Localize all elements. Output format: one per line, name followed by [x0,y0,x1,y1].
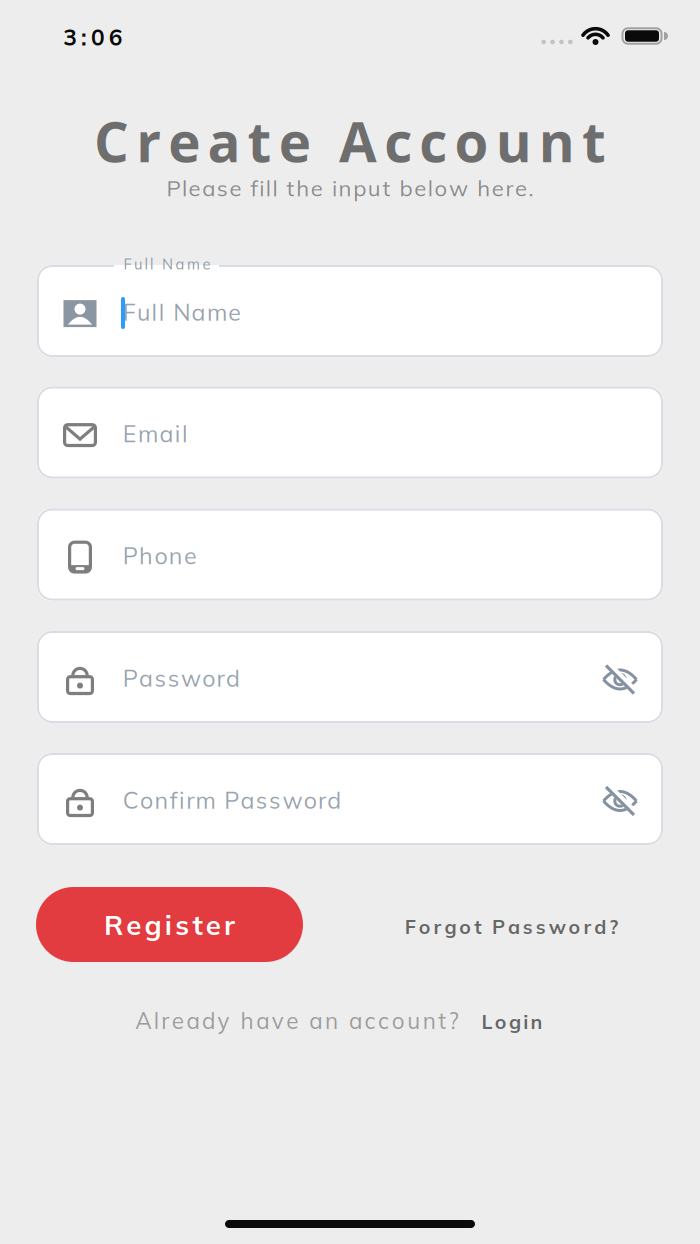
staticText: f [170,785,178,814]
staticText: E [123,419,137,448]
staticText: u [134,255,142,273]
staticText: a [175,255,184,273]
staticText: b [400,174,413,202]
staticText: e [228,297,241,326]
staticText: t [474,914,481,939]
staticText: u [407,1006,420,1034]
staticText: N [162,255,173,273]
staticText: r [161,1006,169,1034]
staticText: P [224,785,239,814]
staticText: e [168,104,200,178]
staticText: . [529,174,534,202]
staticText: t [582,104,606,178]
staticText: F [123,255,131,273]
staticText: h [296,174,309,202]
staticText: L [482,1009,493,1034]
staticText: s [175,907,189,942]
staticText: e [414,174,426,202]
staticText: e [184,541,197,570]
staticText: : [81,23,87,51]
staticText: a [159,419,173,448]
staticText: l [144,255,147,273]
staticText: w [549,914,566,939]
staticText: d [202,1006,215,1034]
staticText: a [240,785,254,814]
staticText: e [492,174,504,202]
staticText: c [384,104,412,178]
staticText: u [137,297,150,326]
staticText: l [150,255,153,273]
button[interactable]: P [37,508,663,600]
staticText: l [154,1006,159,1034]
staticText: o [304,785,317,814]
staticText: n [169,541,183,570]
staticText: e [172,1006,184,1034]
staticText: P [123,663,138,692]
button[interactable]: P [37,631,663,723]
staticText: h [241,1006,254,1034]
staticText: r [318,785,326,814]
staticText: o [434,174,447,202]
button[interactable]: C [37,753,663,845]
staticText: w [181,663,201,692]
button[interactable]: F [405,914,618,939]
staticText: h [139,541,153,570]
button[interactable]: F [37,265,663,357]
button[interactable]: Show confirm password [602,786,638,816]
staticText: a [349,1006,362,1034]
staticText: l [272,174,277,202]
staticText: 6 [109,23,123,51]
staticText: i [259,174,264,202]
staticText: ? [609,914,618,939]
staticText: a [186,1006,199,1034]
staticText: r [434,914,442,939]
staticText: a [508,914,520,939]
staticText: o [392,1006,405,1034]
staticText: f [251,174,258,202]
staticText: d [226,663,240,692]
button[interactable]: L [482,1009,542,1034]
staticText: n [154,785,168,814]
staticText: o [154,541,167,570]
button[interactable]: E [37,386,663,478]
staticText: r [217,663,225,692]
staticText: c [364,1006,375,1034]
staticText: v [272,1006,284,1034]
staticText: a [256,1006,269,1034]
button[interactable]: R [36,887,303,962]
staticText: d [594,914,606,939]
staticText: A [339,104,377,178]
staticText: l [159,297,165,326]
staticText: o [454,104,488,178]
staticText: r [136,104,161,178]
staticText: P [492,914,505,939]
staticText: l [182,419,188,448]
staticText: ? [449,1006,459,1034]
staticText: u [496,104,532,178]
staticText: e [286,1006,298,1034]
staticText: e [126,907,141,942]
staticText: e [515,174,527,202]
staticText: i [523,1009,528,1034]
staticText: a [192,297,206,326]
staticText: P [123,541,138,570]
staticText: e [229,174,241,202]
staticText: r [186,785,194,814]
staticText: C [94,104,129,178]
staticText: s [536,914,546,939]
staticText: i [179,785,185,814]
staticText: t [438,1006,446,1034]
staticText: e [189,174,201,202]
staticText: 0 [91,23,105,51]
staticText: g [509,1009,521,1034]
staticText: e [311,174,323,202]
button[interactable]: Show password [602,664,638,694]
